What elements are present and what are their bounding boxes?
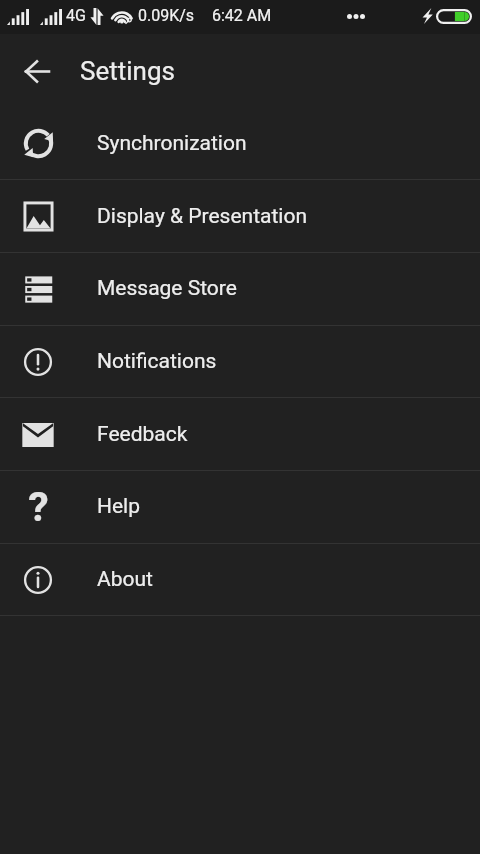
button[interactable]: Message Store bbox=[0, 252, 480, 325]
staticText: 0.09K/s bbox=[138, 6, 195, 25]
staticText: Settings bbox=[80, 56, 175, 86]
button[interactable]: Synchronization bbox=[0, 107, 480, 180]
staticText: Synchronization bbox=[97, 131, 247, 156]
button[interactable]: Notifications bbox=[0, 325, 480, 398]
button[interactable]: Display & Presentation bbox=[0, 180, 480, 253]
staticText: 4G bbox=[66, 6, 86, 25]
staticText: About bbox=[97, 567, 153, 592]
staticText: Message Store bbox=[97, 276, 237, 301]
button[interactable]: About bbox=[0, 543, 480, 616]
staticText: Help bbox=[97, 494, 141, 519]
staticText: Feedback bbox=[97, 422, 188, 447]
button[interactable]: Back bbox=[13, 47, 61, 95]
button[interactable]: Feedback bbox=[0, 398, 480, 471]
staticText: ? bbox=[28, 483, 49, 531]
button[interactable]: ? bbox=[0, 470, 480, 543]
staticText: 6:42 AM bbox=[212, 6, 272, 25]
staticText: Notifications bbox=[97, 349, 217, 374]
staticText: Display & Presentation bbox=[97, 204, 308, 229]
